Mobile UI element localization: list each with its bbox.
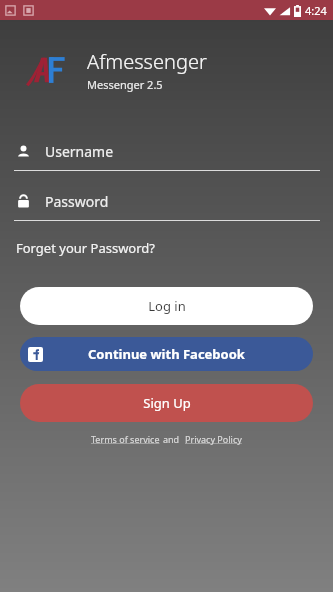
button[interactable]: Password (0, 192, 333, 221)
button[interactable]: Log in (20, 287, 313, 325)
staticText: 4:24 (305, 3, 327, 18)
other: Username (16, 144, 31, 159)
staticText: Afmessenger (87, 48, 207, 75)
staticText: and (163, 433, 180, 445)
staticText: Sign Up (143, 394, 191, 412)
staticText: Messenger 2.5 (87, 77, 163, 92)
staticText: Username (45, 142, 114, 161)
button[interactable]: Privacy Policy (185, 433, 242, 445)
button[interactable]: Sign Up (20, 384, 313, 422)
button[interactable]: Continue with Facebook (20, 337, 313, 371)
staticText: Log in (148, 297, 186, 315)
staticText: Password (45, 192, 109, 211)
button[interactable]: Forget your Password? (16, 239, 155, 257)
button[interactable]: Terms of service (91, 433, 160, 445)
staticText: Continue with Facebook (88, 345, 245, 363)
button[interactable]: Username (0, 142, 333, 171)
other: Password (16, 194, 31, 209)
